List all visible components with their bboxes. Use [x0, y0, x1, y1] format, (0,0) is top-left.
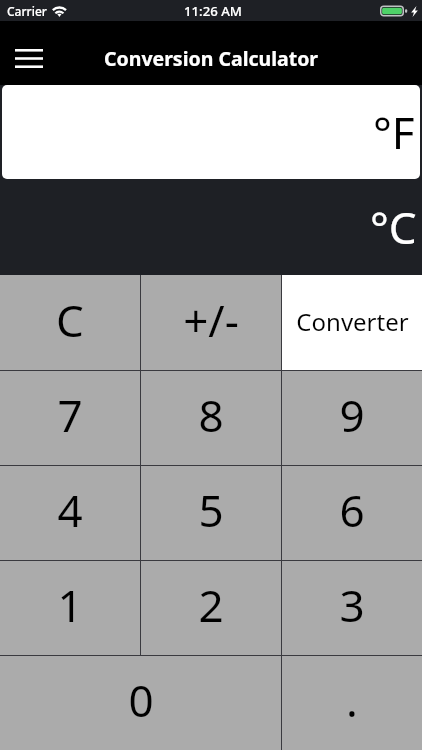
staticText: C: [56, 290, 84, 350]
staticText: Carrier: [7, 3, 47, 19]
staticText: +/-: [183, 290, 239, 350]
staticText: Converter: [296, 305, 409, 338]
button[interactable]: 1: [0, 561, 140, 655]
staticText: 7: [57, 385, 83, 445]
button[interactable]: C: [0, 275, 140, 370]
button[interactable]: 9: [282, 371, 422, 465]
staticText: 0: [128, 670, 154, 730]
staticText: 3: [339, 575, 365, 635]
staticText: .: [346, 670, 358, 730]
button[interactable]: 0: [0, 656, 281, 750]
staticText: 4: [57, 480, 83, 540]
staticText: 5: [198, 480, 224, 540]
button[interactable]: Menu: [2, 36, 56, 80]
staticText: Conversion Calculator: [104, 45, 319, 72]
button[interactable]: 6: [282, 466, 422, 560]
staticText: 2: [198, 575, 224, 635]
button[interactable]: .: [282, 656, 422, 750]
button[interactable]: 2: [141, 561, 281, 655]
button[interactable]: Converter: [282, 275, 422, 370]
staticText: °F: [373, 102, 415, 162]
button[interactable]: 5: [141, 466, 281, 560]
staticText: 9: [339, 385, 365, 445]
button[interactable]: 3: [282, 561, 422, 655]
staticText: °C: [370, 197, 417, 257]
staticText: 11:26 AM: [184, 2, 242, 20]
button[interactable]: 4: [0, 466, 140, 560]
button[interactable]: 8: [141, 371, 281, 465]
staticText: 6: [339, 480, 365, 540]
staticText: 1: [57, 575, 83, 635]
button[interactable]: 7: [0, 371, 140, 465]
staticText: 8: [198, 385, 224, 445]
button[interactable]: +/-: [141, 275, 281, 370]
